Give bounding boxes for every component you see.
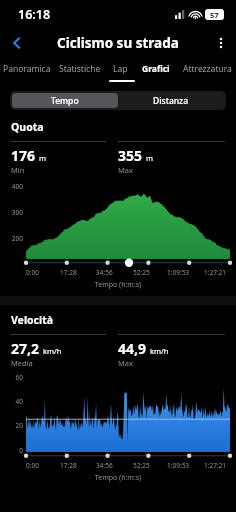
- button[interactable]: Statistiche: [53, 58, 106, 80]
- staticText: 1:27:21: [204, 461, 227, 470]
- staticText: Tempo (h:m:s): [0, 473, 236, 483]
- staticText: 0:00: [26, 268, 39, 277]
- staticText: Grafici: [142, 63, 170, 75]
- button[interactable]: Back: [0, 28, 34, 58]
- staticText: 17:28: [60, 461, 77, 470]
- staticText: 60: [0, 373, 23, 382]
- staticText: 52:25: [133, 268, 150, 277]
- staticText: Max: [118, 358, 133, 368]
- staticText: Statistiche: [59, 63, 101, 75]
- staticText: 16:18: [18, 6, 51, 23]
- button[interactable]: Panoramica: [0, 58, 53, 80]
- staticText: 1:09:53: [167, 461, 190, 470]
- button[interactable]: Grafici: [134, 58, 178, 80]
- staticText: Panoramica: [3, 63, 51, 75]
- staticText: Distanza: [153, 95, 189, 107]
- staticText: 17:28: [60, 268, 77, 277]
- staticText: 1:27:21: [204, 268, 227, 277]
- staticText: 34:56: [96, 268, 113, 277]
- staticText: km/h: [150, 346, 169, 356]
- staticText: 0:00: [26, 461, 39, 470]
- staticText: 176: [11, 146, 36, 165]
- staticText: 34:56: [96, 461, 113, 470]
- staticText: m: [146, 153, 154, 163]
- button[interactable]: Attrezzatura: [178, 58, 236, 80]
- button[interactable]: Distanza: [118, 93, 224, 108]
- staticText: 44,9: [118, 339, 147, 358]
- button[interactable]: Tempo: [12, 93, 118, 108]
- staticText: 52:25: [133, 461, 150, 470]
- staticText: 300: [0, 208, 23, 217]
- staticText: Ciclismo su strada: [57, 34, 179, 52]
- staticText: Media: [11, 358, 33, 368]
- button[interactable]: Lap: [106, 58, 134, 80]
- staticText: 27,2: [11, 339, 40, 358]
- staticText: Velocità: [11, 313, 53, 327]
- staticText: 400: [0, 182, 23, 191]
- staticText: Min: [11, 165, 25, 175]
- staticText: 1:09:53: [167, 268, 190, 277]
- staticText: Quota: [11, 120, 44, 134]
- staticText: 40: [0, 397, 23, 406]
- staticText: 355: [118, 146, 143, 165]
- staticText: km/h: [43, 346, 62, 356]
- staticText: Attrezzatura: [183, 63, 232, 75]
- staticText: 20: [0, 421, 23, 430]
- button[interactable]: More options: [206, 28, 236, 58]
- staticText: 57: [210, 10, 219, 20]
- staticText: Max: [118, 165, 133, 175]
- staticText: 0: [0, 446, 23, 455]
- staticText: m: [39, 153, 47, 163]
- staticText: Tempo (h:m:s): [0, 280, 236, 290]
- staticText: 200: [0, 234, 23, 243]
- staticText: Tempo: [51, 95, 79, 107]
- staticText: Lap: [113, 63, 128, 75]
